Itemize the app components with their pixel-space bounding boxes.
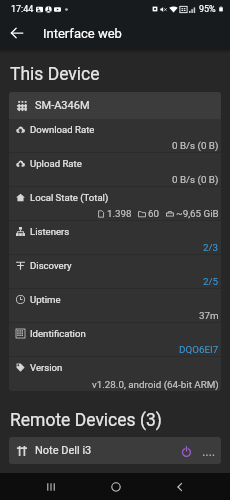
staticText: 37m xyxy=(199,310,219,321)
staticText: Interface web xyxy=(43,26,122,41)
staticText: 0 B/s (0 B) xyxy=(172,174,219,185)
button[interactable]: Discovery xyxy=(9,255,221,289)
staticText: Identification xyxy=(30,328,86,339)
button[interactable]: Listeners xyxy=(9,221,221,255)
staticText: Version xyxy=(30,362,63,373)
button[interactable]: More options xyxy=(197,440,219,462)
staticText: Remote Devices (3) xyxy=(10,410,162,431)
staticText: Upload Rate xyxy=(30,158,82,169)
button[interactable]: Home xyxy=(102,473,129,500)
staticText: v1.28.0, android (64-bit ARM) xyxy=(92,379,219,390)
staticText: Listeners xyxy=(30,226,70,237)
button[interactable]: Note Dell i3 xyxy=(9,437,221,464)
button[interactable]: Identification xyxy=(9,323,221,357)
staticText: SM-A346M xyxy=(35,99,90,112)
button[interactable]: Version xyxy=(9,357,221,391)
button[interactable]: Uptime xyxy=(9,289,221,323)
staticText: Discovery xyxy=(30,260,72,271)
staticText: DQO6EI7 xyxy=(179,344,219,355)
button[interactable]: Upload Rate xyxy=(9,153,221,187)
staticText: 60 xyxy=(148,208,160,219)
staticText: Uptime xyxy=(30,294,61,305)
staticText: Local State (Total) xyxy=(30,192,109,203)
staticText: 17:44 xyxy=(11,4,34,15)
button[interactable]: Back xyxy=(0,18,34,48)
staticText: Note Dell i3 xyxy=(35,444,92,457)
staticText: This Device xyxy=(10,64,100,85)
staticText: 0 B/s (0 B) xyxy=(172,140,219,151)
button[interactable]: Power xyxy=(175,440,197,462)
button[interactable]: Back xyxy=(166,473,193,500)
button[interactable]: SM-A346M xyxy=(9,92,221,119)
staticText: 2/3 xyxy=(203,242,219,253)
staticText: 2/5 xyxy=(203,276,219,287)
staticText: 1.398 xyxy=(107,208,132,219)
staticText: ~9,65 GiB xyxy=(176,208,219,219)
staticText: Download Rate xyxy=(30,124,95,135)
button[interactable]: Download Rate xyxy=(9,119,221,153)
button[interactable]: Recent apps xyxy=(37,473,64,500)
button[interactable]: Local State (Total) xyxy=(9,187,221,221)
staticText: 95% xyxy=(199,4,216,15)
